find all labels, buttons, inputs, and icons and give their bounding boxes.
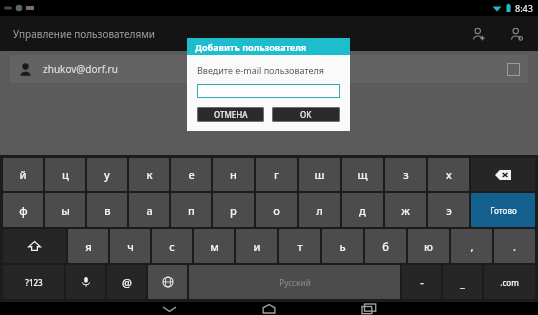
staticText: ч [127,239,134,254]
button[interactable]: л [299,193,340,227]
button[interactable]: я [68,229,108,263]
button[interactable]: е [171,158,211,191]
staticText: у [104,167,110,182]
button[interactable]: Готово [471,193,535,227]
button[interactable]: щ [342,158,383,191]
staticText: с [169,239,175,254]
button[interactable]: Back [119,302,219,315]
staticText: ы [61,203,70,218]
staticText: . [513,239,516,254]
staticText: .com [500,277,519,288]
button[interactable]: п [171,193,211,227]
staticText: Добавить пользователя [195,41,307,53]
button[interactable]: э [428,193,469,227]
staticText: н [230,167,237,182]
staticText: ш [314,167,325,182]
button[interactable]: ф [3,193,43,227]
staticText: ф [19,203,28,218]
button[interactable]: т [279,229,320,263]
button[interactable]: ы [45,193,85,227]
staticText: е [188,167,195,182]
staticText: и [253,239,261,254]
button[interactable]: ц [45,158,85,191]
button[interactable]: Add user [466,22,490,46]
button[interactable]: Home [219,302,319,315]
button[interactable]: м [194,229,234,263]
button[interactable]: Select user [507,63,520,76]
button[interactable]: . [494,229,535,263]
button[interactable]: ю [408,229,449,263]
button[interactable]: ж [385,193,426,227]
button[interactable]: - [402,265,441,299]
staticText: ц [62,167,69,182]
staticText: ОТМЕНА [214,109,248,120]
button[interactable]: ш [299,158,340,191]
staticText: 8:43 [515,2,533,14]
button[interactable]: Recent apps [319,302,419,315]
staticText: ?123 [25,277,43,288]
staticText: м [210,239,219,254]
button[interactable]: Русский [189,265,400,299]
button[interactable]: й [3,158,43,191]
button[interactable]: у [87,158,127,191]
staticText: о [273,203,280,218]
staticText: щ [357,167,368,182]
staticText: Готово [490,205,517,216]
button[interactable]: с [152,229,192,263]
staticText: й [19,167,27,182]
button[interactable]: б [365,229,406,263]
button[interactable]: з [385,158,426,191]
staticText: в [104,203,111,218]
staticText: п [188,203,195,218]
staticText: ь [339,239,346,254]
staticText: г [274,167,279,182]
button[interactable]: User settings [504,22,528,46]
button[interactable]: ОТМЕНА [197,107,264,122]
staticText: - [420,275,424,290]
staticText: Русский [279,277,311,288]
button[interactable]: ч [110,229,150,263]
button[interactable]: р [213,193,254,227]
staticText: э [446,203,452,218]
button[interactable]: Backspace [471,158,535,191]
staticText: @ [122,275,132,290]
staticText: б [382,239,389,254]
staticText: х [446,167,452,182]
staticText: л [316,203,323,218]
button[interactable]: д [342,193,383,227]
button[interactable]: OK [272,107,340,122]
button[interactable] [197,84,340,98]
button[interactable]: к [129,158,169,191]
button[interactable]: а [129,193,169,227]
staticText: ю [424,239,433,254]
button[interactable]: @ [107,265,146,299]
staticText: Введите e-mail пользователя [197,64,324,76]
button[interactable]: в [87,193,127,227]
staticText: д [359,203,366,218]
staticText: а [146,203,153,218]
staticText: zhukov@dorf.ru [43,62,118,76]
button[interactable]: _ [443,265,482,299]
staticText: OK [300,109,312,120]
button[interactable]: и [236,229,277,263]
staticText: з [403,167,409,182]
button[interactable]: х [428,158,469,191]
button[interactable]: ь [322,229,363,263]
staticText: , [470,239,474,254]
button[interactable]: Change language [148,265,187,299]
button[interactable]: о [256,193,297,227]
staticText: я [85,239,92,254]
staticText: р [230,203,237,218]
button[interactable]: Shift [3,229,66,263]
button[interactable]: ?123 [3,265,64,299]
button[interactable]: Voice input [66,265,105,299]
button[interactable]: н [213,158,254,191]
button[interactable]: , [451,229,492,263]
button[interactable]: .com [484,265,535,299]
staticText: к [146,167,153,182]
button[interactable]: г [256,158,297,191]
staticText: Управление пользователями [13,27,156,41]
staticText: ж [401,203,410,218]
button[interactable]: zhukov@dorf.ru [10,55,528,83]
staticText: _ [460,275,465,290]
